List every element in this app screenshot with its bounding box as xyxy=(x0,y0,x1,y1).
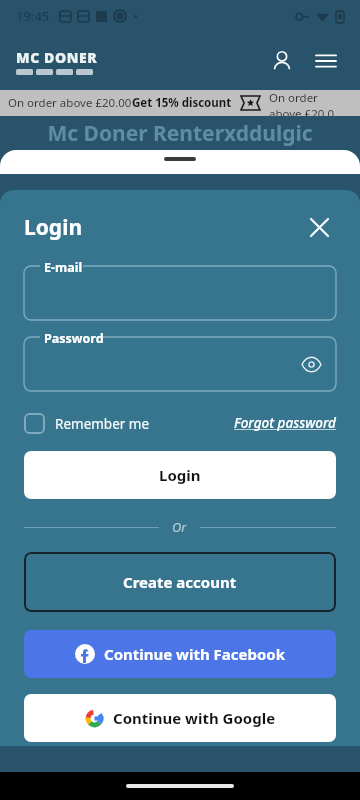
button[interactable]: Menu xyxy=(306,41,346,81)
button[interactable]: Create account xyxy=(24,552,336,612)
button[interactable]: Show password xyxy=(294,347,328,381)
staticText: Login xyxy=(24,213,83,242)
staticText: Continue with Google xyxy=(113,708,276,728)
staticText: Mc Doner Renterxddulgic xyxy=(47,119,313,148)
staticText: MC DONER xyxy=(16,48,98,67)
staticText: Continue with Facebook xyxy=(104,644,286,664)
staticText: Get 15% discount xyxy=(132,95,232,111)
staticText: On order above £20.0 xyxy=(269,90,352,116)
button[interactable]: Continue with Google xyxy=(24,694,336,742)
button[interactable]: Continue with Facebook xyxy=(24,630,336,678)
staticText: E-mail xyxy=(44,259,83,276)
button[interactable]: Account xyxy=(262,41,302,81)
staticText: Remember me xyxy=(55,415,150,433)
staticText: Create account xyxy=(123,572,237,592)
button[interactable]: Forgot password xyxy=(234,414,336,432)
staticText: Or xyxy=(172,518,187,536)
staticText: Password xyxy=(44,330,104,347)
button[interactable]: Login xyxy=(24,451,336,499)
staticText: Login xyxy=(159,465,201,485)
button[interactable]: Remember me xyxy=(24,413,156,434)
staticText: Forgot password xyxy=(234,414,336,432)
staticText: 19:45 xyxy=(16,7,50,25)
button[interactable]: Close xyxy=(302,210,336,244)
staticText: On order above £20.00 xyxy=(8,95,132,111)
